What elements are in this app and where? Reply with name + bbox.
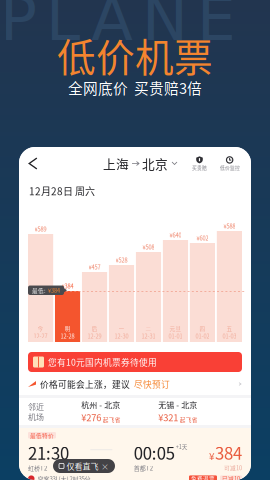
staticText: 上海 (103, 154, 129, 173)
staticText: ¥384 (62, 282, 74, 290)
staticText: 最低特价 (30, 431, 54, 439)
staticText: 免费退票 (191, 475, 215, 480)
staticText: 首都T2 (134, 464, 153, 472)
staticText: 00:05 (134, 440, 175, 465)
staticText: ¥276 (81, 410, 101, 424)
staticText: 五 (226, 324, 232, 332)
button[interactable]: 邻近 (19, 398, 251, 425)
staticText: 虹桥T2 (28, 464, 47, 472)
button[interactable]: 返回 (25, 148, 41, 178)
staticText: ¥588 (223, 222, 235, 230)
staticText: 12-29 (87, 332, 101, 340)
staticText: ¥589 (35, 225, 47, 233)
staticText: 无锡 - 北京 (158, 399, 197, 411)
staticText: 杭州 - 北京 (81, 399, 120, 411)
staticText: 今 (38, 324, 44, 332)
staticText: 元旦 (169, 324, 181, 332)
staticText: 全网底价 买贵赔3倍 (68, 77, 202, 98)
staticText: 起飞省 (180, 415, 198, 423)
staticText: 可减10 (224, 464, 242, 472)
staticText: 空客33L(大) 2时35分 (37, 474, 90, 480)
staticText: 384 (215, 440, 242, 465)
staticText: 二 (145, 324, 151, 332)
button[interactable]: 仅看直飞 (53, 459, 115, 473)
staticText: ¥602 (196, 234, 208, 242)
staticText: ¥640 (169, 231, 181, 239)
staticText: 北京 (142, 154, 168, 173)
staticText: +1天 (176, 442, 188, 451)
staticText: 明 (65, 324, 71, 332)
staticText: 后 (91, 324, 97, 332)
staticText: 01-01 (168, 332, 182, 340)
staticText: 邻近 (28, 400, 44, 412)
staticText: ¥ (209, 449, 215, 463)
button[interactable]: 买贵赔 (192, 156, 207, 171)
staticText: 12月28日 周六 (29, 184, 95, 198)
staticText: ¥508 (142, 243, 154, 251)
button[interactable]: 价格可能会上涨，建议 (19, 373, 251, 395)
staticText: 12-31 (141, 332, 155, 340)
staticText: 起飞省 (103, 415, 121, 423)
staticText: 01-03 (222, 332, 236, 340)
staticText: 已减10 (222, 475, 240, 480)
staticText: 一 (118, 324, 124, 332)
staticText: 12-30 (114, 332, 128, 340)
staticText: ¥457 (88, 263, 100, 271)
staticText: 买贵赔 (192, 164, 207, 171)
staticText: 01-02 (195, 332, 209, 340)
staticText: ¥321 (158, 410, 178, 424)
staticText: PLANE (0, 0, 236, 54)
button[interactable]: 最低特价 (19, 428, 251, 480)
button[interactable]: 上海 (101, 154, 179, 173)
button[interactable]: 低价监控 (220, 156, 240, 171)
staticText: 21:30 (28, 440, 69, 465)
staticText: 您有10元国内机票券待使用 (48, 356, 157, 368)
staticText: 12-28 (61, 332, 75, 340)
staticText: 仅看直飞 (66, 460, 98, 472)
staticText: 低价监控 (220, 164, 240, 171)
staticText: × (101, 460, 109, 472)
staticText: 价格可能会上涨，建议 (40, 378, 130, 390)
staticText: 低价机票 (57, 27, 213, 83)
staticText: 四 (199, 324, 205, 332)
staticText: 机场 (28, 411, 44, 423)
staticText: 12-27 (34, 332, 48, 340)
button[interactable]: 您有10元国内机票券待使用 (28, 352, 242, 372)
staticText: 尽快预订 (134, 378, 170, 390)
staticText: ¥384 (48, 286, 60, 294)
staticText: ¥528 (115, 256, 127, 264)
staticText: 最低: (32, 286, 46, 294)
